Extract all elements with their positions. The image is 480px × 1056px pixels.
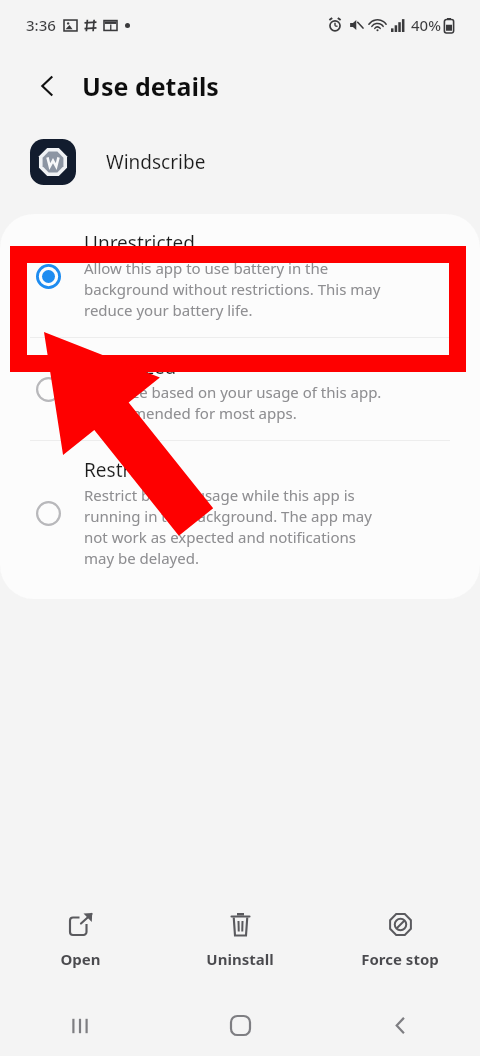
staticText: Windscribe [106, 149, 206, 175]
button[interactable]: Open [0, 885, 160, 995]
staticText: Restricted [84, 457, 174, 483]
staticText: Open [60, 949, 101, 969]
staticText: Uninstall [206, 949, 274, 969]
button[interactable]: Unrestricted [0, 214, 480, 337]
staticText: Allow this app to use battery in the bac… [84, 258, 381, 321]
button[interactable]: Back [26, 64, 70, 108]
button[interactable]: Optimized [0, 338, 480, 440]
staticText: 3:36 [26, 15, 56, 35]
staticText: Unrestricted [84, 230, 195, 256]
staticText: Optimized [84, 354, 177, 380]
staticText: Optimize based on your usage of this app… [84, 382, 382, 424]
button[interactable]: Force stop [320, 885, 480, 995]
staticText: Use details [82, 69, 219, 103]
button[interactable]: Windscribe [0, 122, 480, 202]
button[interactable]: Back [320, 995, 480, 1056]
staticText: Restrict battery usage while this app is… [84, 485, 372, 569]
button[interactable]: Home [160, 995, 320, 1056]
staticText: Force stop [361, 949, 439, 969]
staticText: 40% [411, 15, 441, 35]
button[interactable]: Uninstall [160, 885, 320, 995]
button[interactable]: Restricted [0, 441, 480, 585]
button[interactable]: Recents [0, 995, 160, 1056]
